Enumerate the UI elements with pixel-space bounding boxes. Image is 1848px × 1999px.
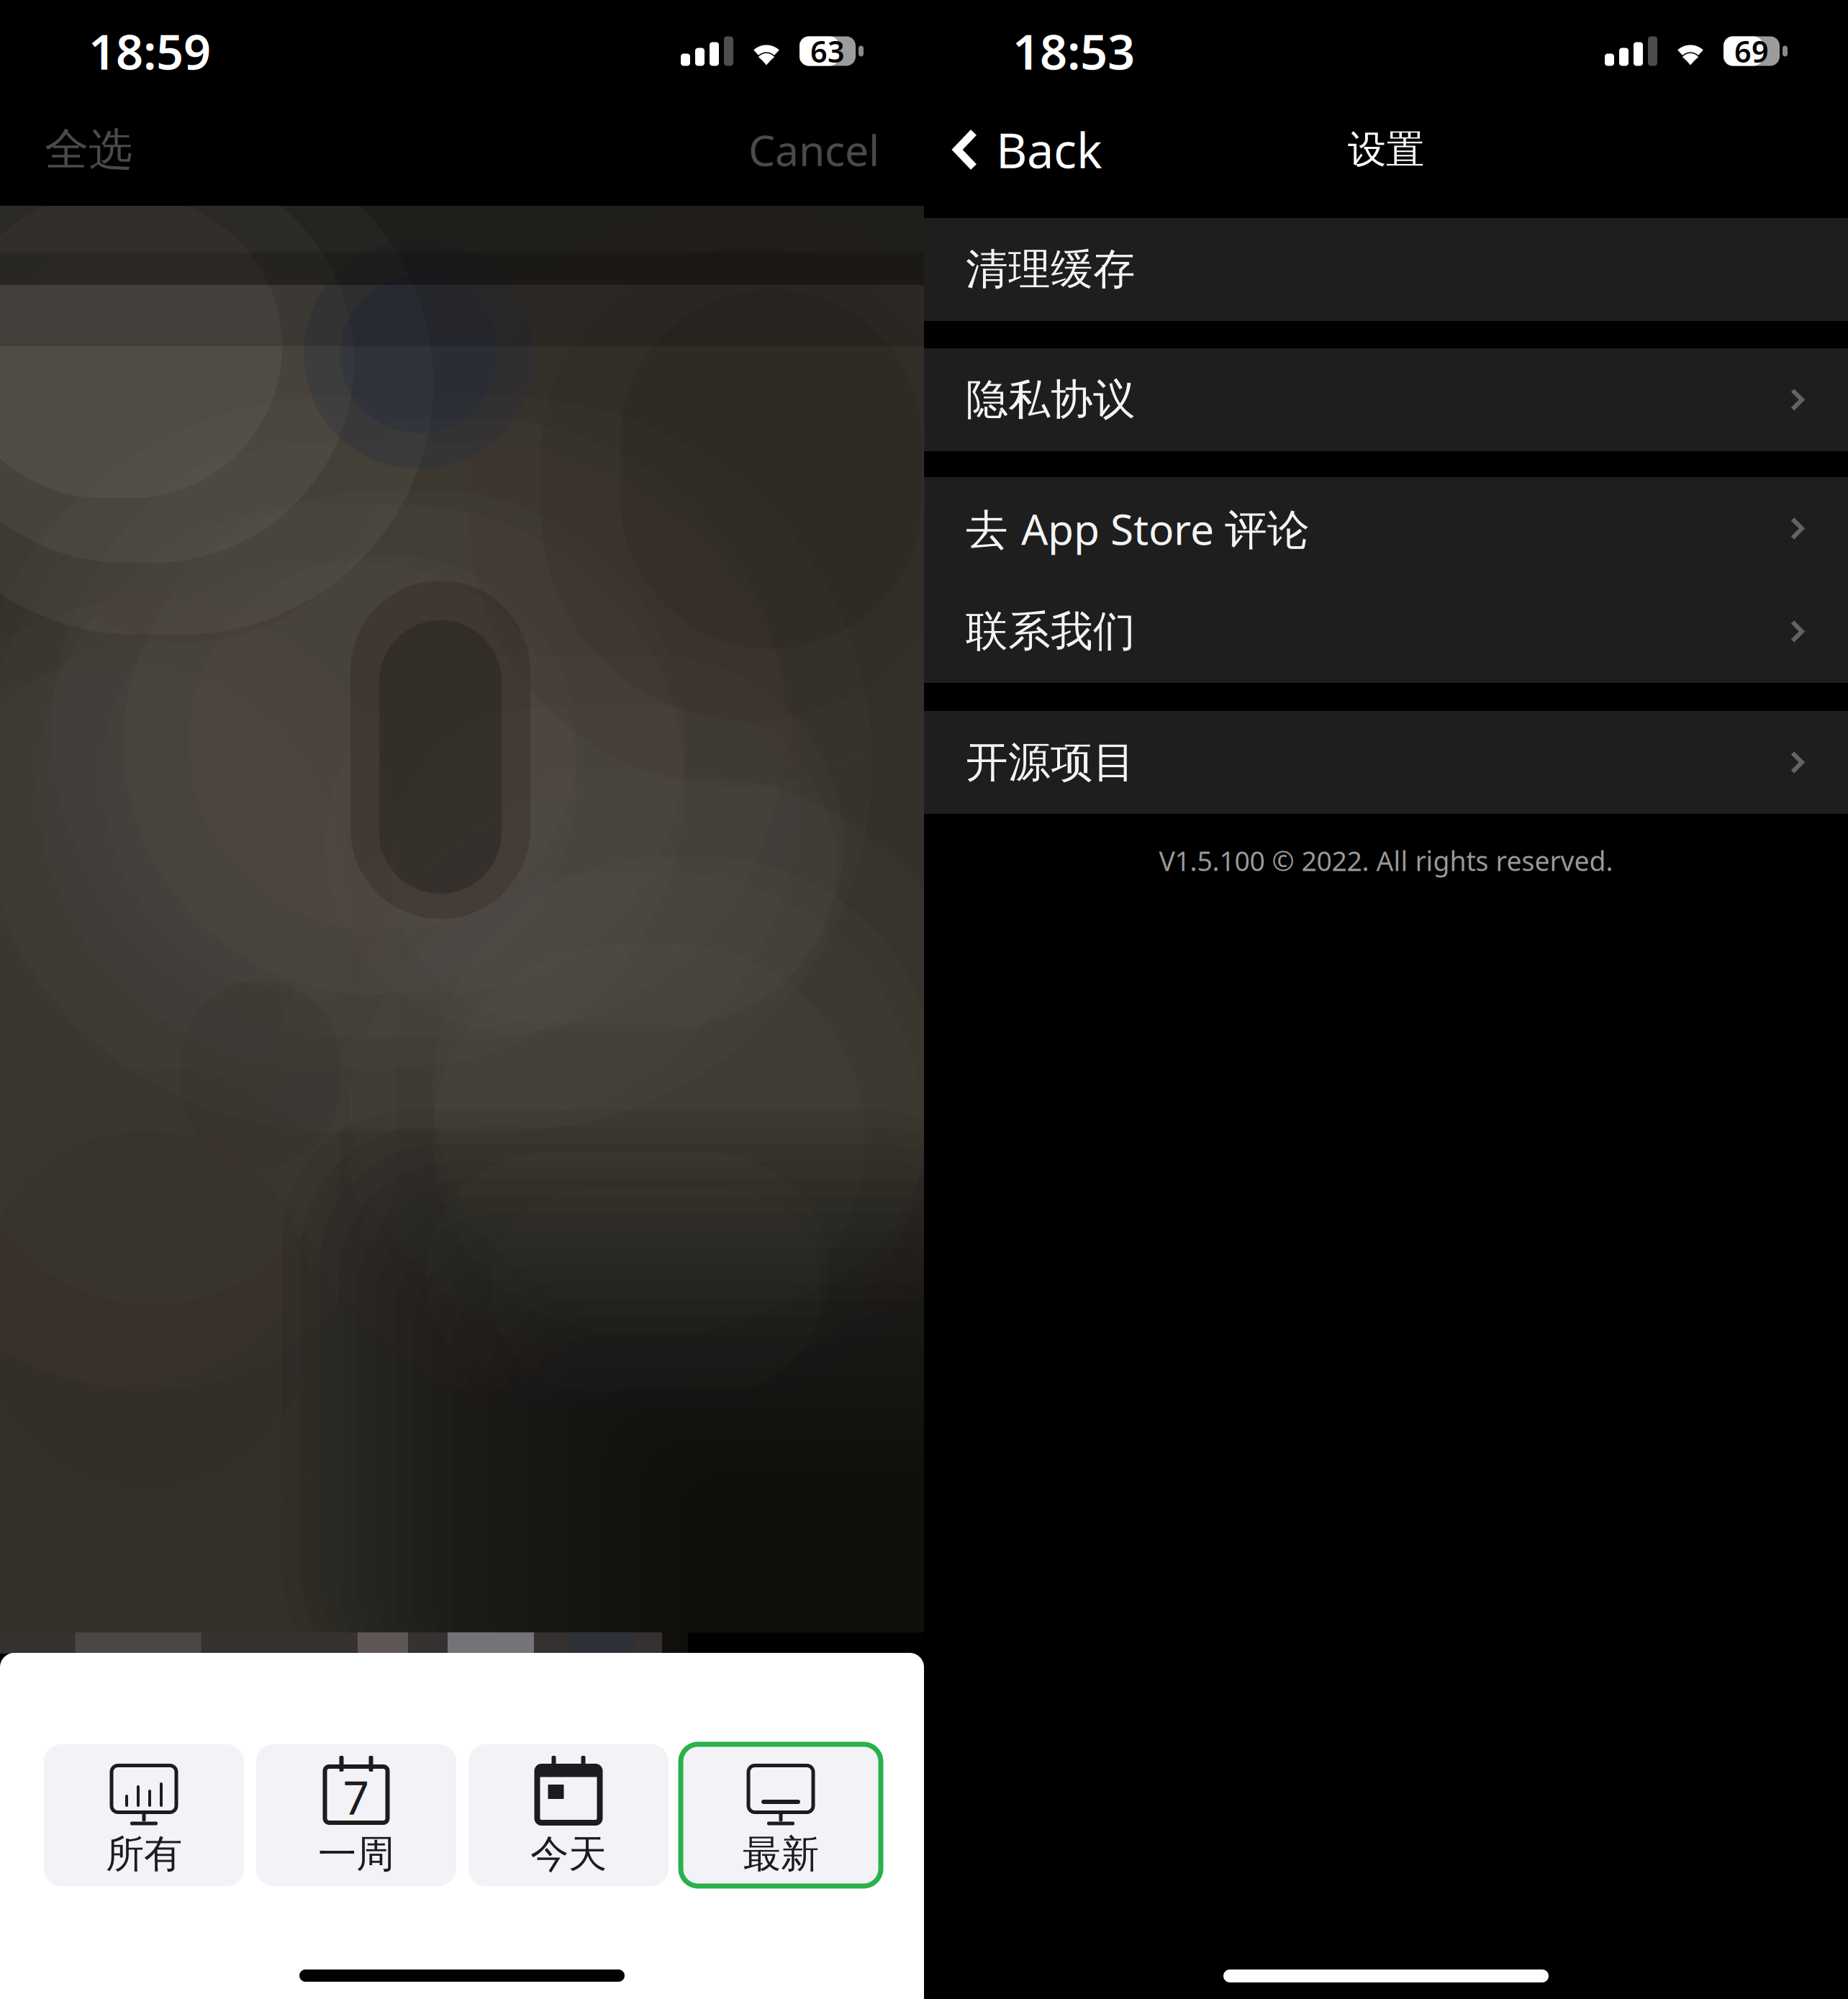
staticText: 开源项目 — [966, 736, 1136, 788]
staticText: 一周 — [318, 1831, 394, 1878]
button[interactable]: 最新 — [681, 1744, 881, 1886]
staticText: 69 — [1734, 31, 1769, 71]
staticText: 去 App Store 评论 — [966, 500, 1310, 557]
button[interactable]: 所有 — [44, 1744, 244, 1886]
staticText: 全选 — [45, 123, 132, 177]
button[interactable]: 开源项目 — [924, 711, 1848, 814]
staticText: 所有 — [106, 1831, 182, 1878]
staticText: Cancel — [748, 122, 879, 178]
staticText: 联系我们 — [966, 606, 1136, 657]
staticText: Back — [996, 118, 1102, 181]
button[interactable]: Back — [924, 110, 1102, 189]
staticText: V1.5.100 © 2022. All rights reserved. — [1159, 843, 1613, 878]
staticText: 今天 — [530, 1831, 607, 1878]
button[interactable]: 清理缓存 — [924, 218, 1848, 321]
staticText: 隐私协议 — [966, 374, 1136, 426]
staticText: 18:59 — [89, 19, 211, 83]
button[interactable]: 全选 — [0, 106, 132, 193]
staticText: 18:53 — [1013, 19, 1135, 83]
staticText: 63 — [810, 31, 845, 71]
button[interactable]: 7 — [256, 1744, 456, 1886]
button[interactable]: 联系我们 — [924, 580, 1848, 683]
button[interactable]: 去 App Store 评论 — [924, 477, 1848, 580]
button[interactable]: Cancel — [748, 106, 924, 193]
staticText: 7 — [343, 1766, 370, 1827]
staticText: 最新 — [743, 1831, 819, 1878]
button[interactable]: 今天 — [468, 1744, 669, 1886]
staticText: 清理缓存 — [966, 244, 1136, 295]
staticText: 设置 — [1348, 126, 1424, 173]
button[interactable]: 隐私协议 — [924, 348, 1848, 451]
